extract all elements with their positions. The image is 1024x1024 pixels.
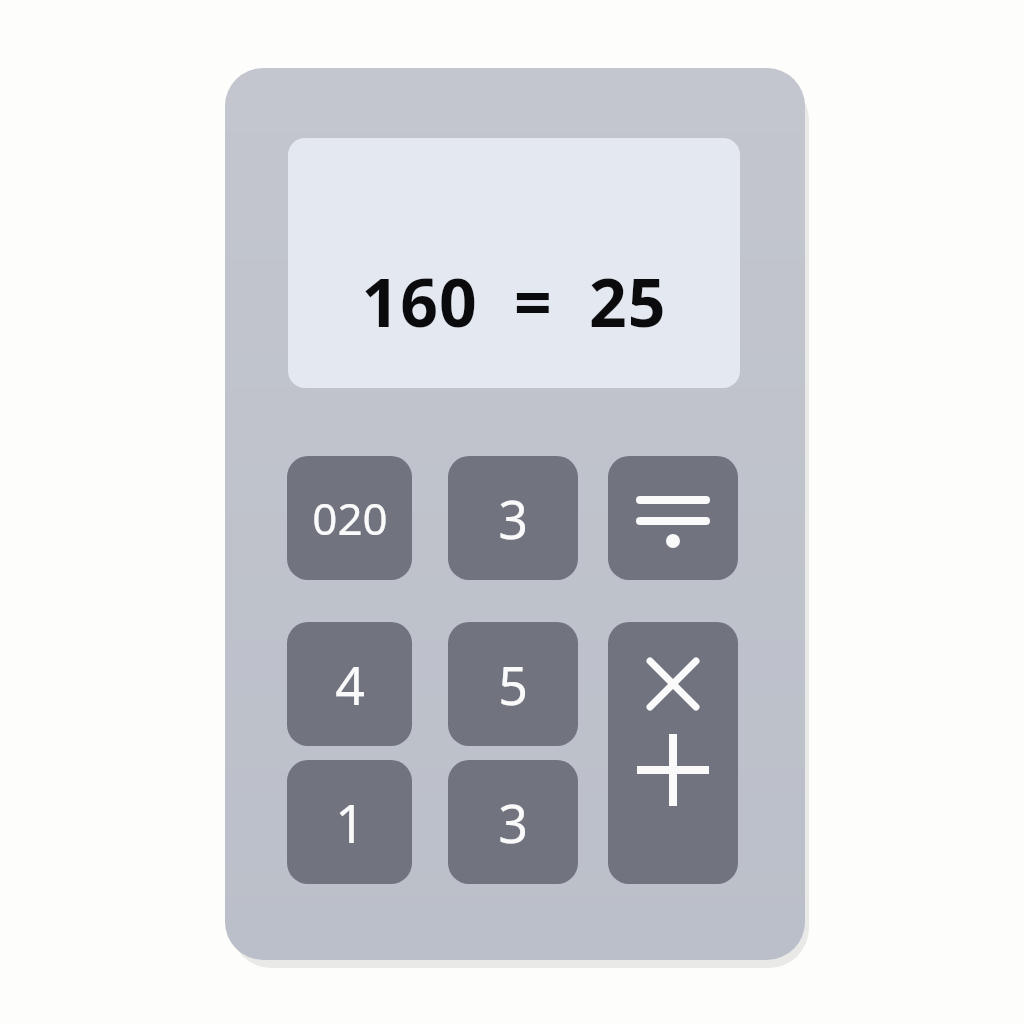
staticText: 5: [498, 649, 528, 720]
staticText: 1: [335, 787, 365, 858]
button[interactable]: 3: [448, 456, 578, 580]
staticText: 4: [335, 649, 365, 720]
staticText: 020: [312, 488, 388, 548]
button[interactable]: 1: [287, 760, 412, 884]
button[interactable]: 020: [287, 456, 412, 580]
button[interactable]: 5: [448, 622, 578, 746]
button[interactable]: 4: [287, 622, 412, 746]
staticText: 3: [498, 787, 528, 858]
button[interactable]: Multiply and add: [608, 622, 738, 884]
button[interactable]: 160 = 25: [288, 138, 740, 388]
button[interactable]: Divide: [608, 456, 738, 580]
button[interactable]: 3: [448, 760, 578, 884]
staticText: 160 = 25: [361, 256, 667, 346]
staticText: 3: [498, 483, 528, 554]
